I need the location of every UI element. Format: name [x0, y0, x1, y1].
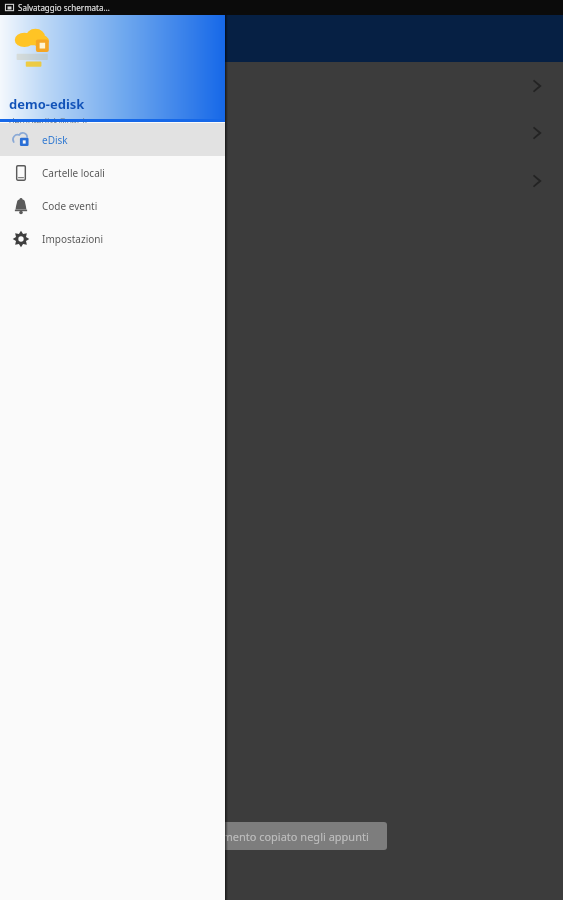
button[interactable]: Code eventi: [0, 189, 225, 222]
button[interactable]: eDisk: [0, 123, 225, 156]
button[interactable]: Open: [0, 109, 563, 157]
staticText: Elemento copiato negli appunti: [207, 829, 369, 844]
other: Open: [529, 173, 545, 189]
staticText: Cartelle locali: [42, 166, 105, 180]
staticText: eDisk: [42, 133, 68, 147]
button[interactable]: Open: [0, 157, 563, 205]
other: Open: [529, 125, 545, 141]
staticText: Impostazioni: [42, 232, 104, 246]
staticText: Salvataggio schermata…: [18, 2, 110, 13]
button[interactable]: demo-edisk: [0, 15, 225, 122]
other: Open: [529, 78, 545, 94]
staticText: demo-edisk@twt.it: [9, 115, 89, 127]
button[interactable]: Open: [0, 62, 563, 109]
staticText: Code eventi: [42, 199, 98, 213]
button[interactable]: Cartelle locali: [0, 156, 225, 189]
button[interactable]: Impostazioni: [0, 222, 225, 255]
staticText: demo-edisk: [9, 95, 85, 113]
